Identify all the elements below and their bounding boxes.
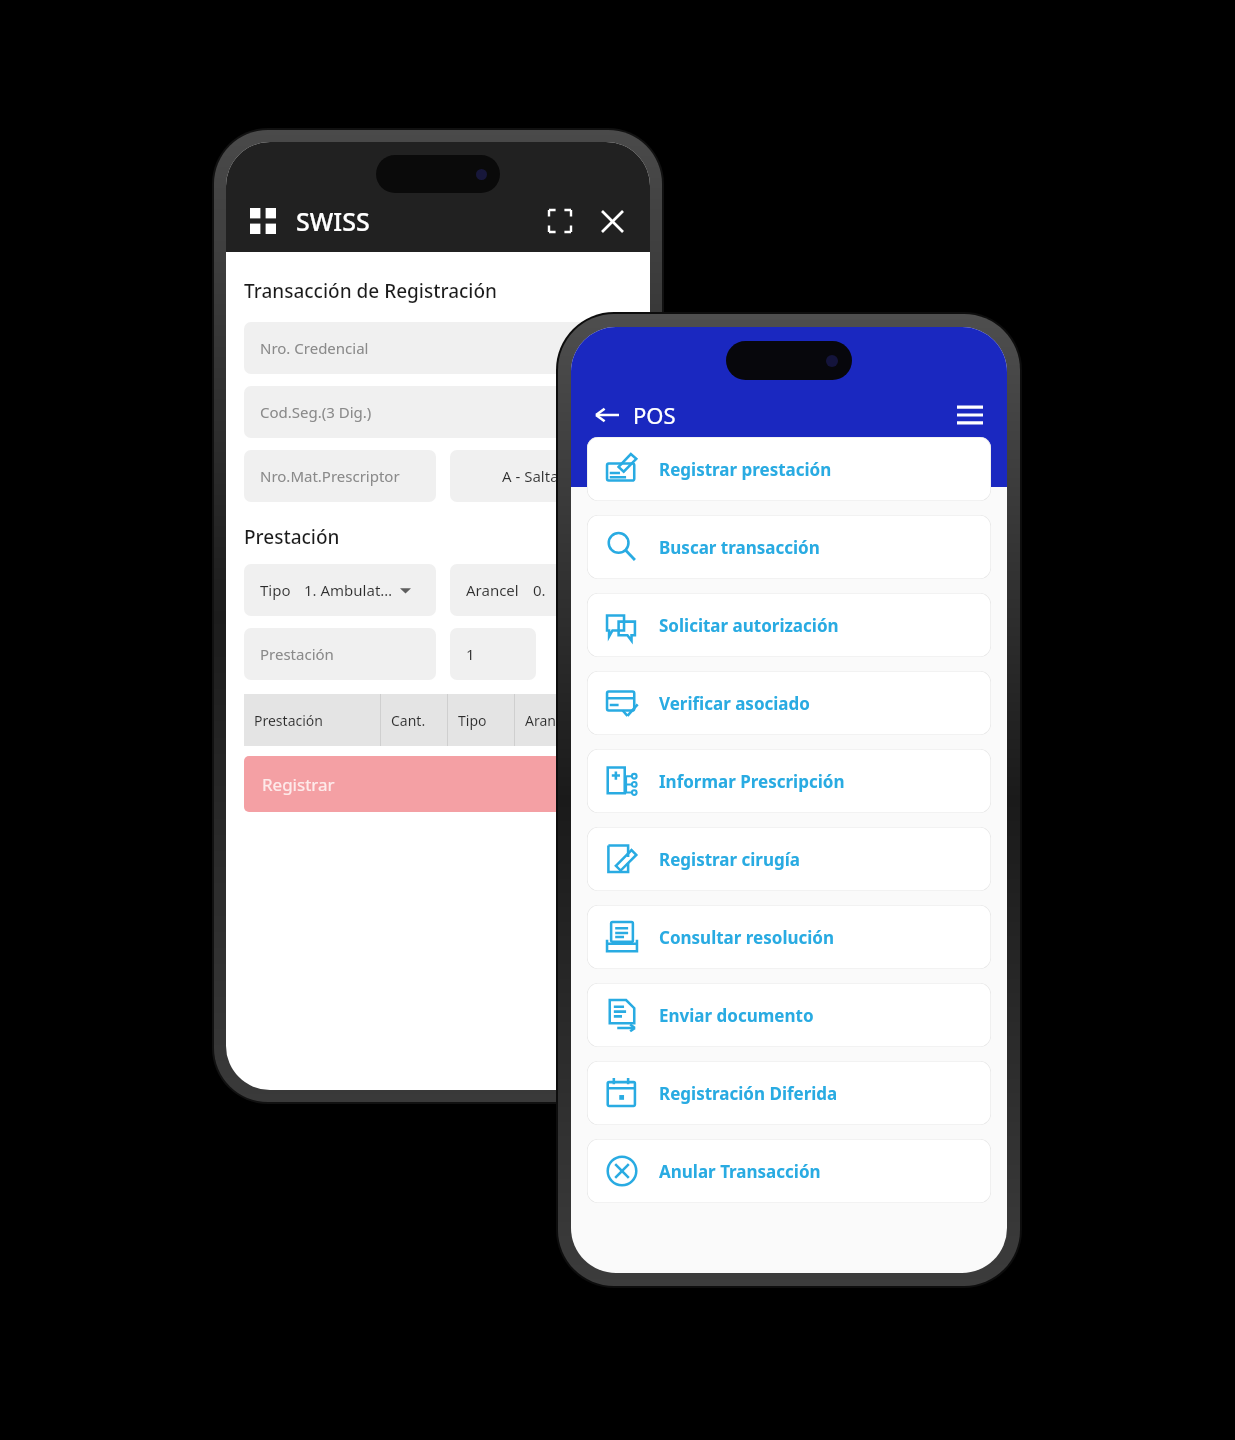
staticText: Registrar	[262, 773, 335, 796]
button[interactable]: 1	[450, 628, 536, 680]
staticText: 0.	[533, 580, 546, 600]
staticText: SWISS	[296, 204, 370, 238]
staticText: Verificar asociado	[659, 692, 810, 715]
staticText: Solicitar autorización	[659, 614, 839, 637]
staticText: Registración Diferida	[659, 1082, 838, 1105]
button[interactable]: Menu	[949, 394, 991, 436]
staticText: Prestación	[244, 524, 340, 550]
button[interactable]: Arancel	[450, 564, 610, 616]
button[interactable]: Informar Prescripción	[587, 749, 991, 813]
button[interactable]: Registración Diferida	[587, 1061, 991, 1125]
button[interactable]: A - Salta	[450, 450, 610, 502]
staticText: Cod.Seg.(3 Dig.)	[260, 402, 372, 422]
staticText: Arancel	[466, 580, 519, 600]
button[interactable]: Registrar cirugía	[587, 827, 991, 891]
staticText: Prestación	[254, 711, 323, 730]
button[interactable]: Cod.Seg.(3 Dig.)	[244, 386, 644, 438]
staticText: Transacción de Registración	[244, 278, 497, 304]
staticText: 1	[466, 644, 475, 664]
button[interactable]: Verificar asociado	[587, 671, 991, 735]
button[interactable]: Enviar documento	[587, 983, 991, 1047]
staticText: Tipo	[458, 711, 487, 730]
staticText: Tipo	[260, 580, 291, 600]
button[interactable]: Registrar prestación	[587, 437, 991, 501]
staticText: Registrar cirugía	[659, 848, 801, 871]
button[interactable]: Registrar	[244, 756, 644, 812]
staticText: Informar Prescripción	[659, 770, 845, 793]
staticText: POS	[633, 400, 676, 430]
button[interactable]: Consultar resolución	[587, 905, 991, 969]
button[interactable]: Apps	[244, 202, 282, 240]
button[interactable]: Nro. Credencial	[244, 322, 644, 374]
button[interactable]: Nro.Mat.Prescriptor	[244, 450, 436, 502]
staticText: 1. Ambulat…	[304, 580, 393, 600]
staticText: Anular Transacción	[659, 1160, 821, 1183]
staticText: Prestación	[260, 644, 334, 664]
staticText: Registrar prestación	[659, 458, 832, 481]
button[interactable]: Tipo	[244, 564, 436, 616]
staticText: Nro. Credencial	[260, 338, 369, 358]
button[interactable]: Back	[587, 395, 627, 435]
staticText: Nro.Mat.Prescriptor	[260, 466, 400, 486]
button[interactable]: Anular Transacción	[587, 1139, 991, 1203]
button[interactable]: Solicitar autorización	[587, 593, 991, 657]
staticText: Aranc	[525, 711, 563, 730]
button[interactable]: Buscar transacción	[587, 515, 991, 579]
staticText: Cant.	[391, 711, 426, 730]
staticText: Enviar documento	[659, 1004, 814, 1027]
staticText: A - Salta	[502, 466, 559, 486]
button[interactable]: Fullscreen	[540, 201, 580, 241]
button[interactable]: Close	[592, 201, 632, 241]
button[interactable]: Prestación	[244, 628, 436, 680]
staticText: Buscar transacción	[659, 536, 820, 559]
staticText: Consultar resolución	[659, 926, 835, 949]
